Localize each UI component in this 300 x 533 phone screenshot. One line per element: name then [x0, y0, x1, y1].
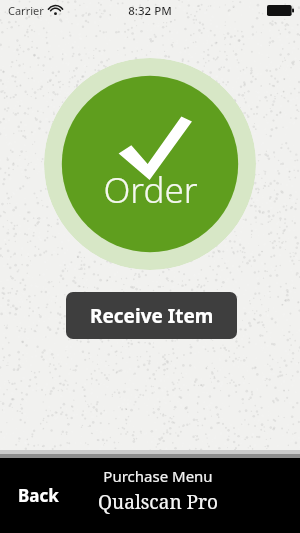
other: Wi-Fi signal: [49, 4, 62, 15]
button[interactable]: Receive Item: [66, 292, 237, 339]
other: Battery full: [267, 5, 294, 16]
staticText: Purchase Menu: [78, 466, 238, 488]
staticText: Receive Item: [90, 303, 214, 329]
staticText: Back: [18, 484, 59, 507]
staticText: 8:32 PM: [0, 3, 300, 533]
staticText: Carrier: [8, 3, 44, 18]
staticText: Order: [103, 166, 198, 214]
button[interactable]: Back: [4, 472, 72, 518]
button[interactable]: Order: [44, 58, 256, 270]
staticText: Qualscan Pro: [78, 489, 238, 515]
